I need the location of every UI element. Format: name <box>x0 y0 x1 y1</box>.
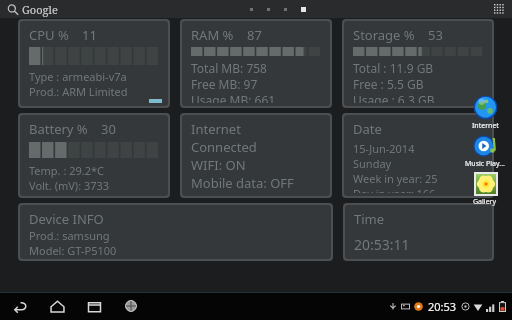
staticText: Storage % <box>353 26 415 44</box>
staticText: Mobile data: OFF <box>191 174 294 192</box>
staticText: Time <box>354 210 385 228</box>
staticText: Device INFO <box>29 210 104 228</box>
button[interactable]: RAM % <box>182 21 330 106</box>
staticText: Sunday <box>353 156 392 171</box>
staticText: Date <box>353 120 382 138</box>
button[interactable]: Home <box>45 294 69 318</box>
button[interactable]: Internet <box>461 94 509 131</box>
staticText: Prod.: ARM Limited <box>29 84 128 99</box>
staticText: Battery % <box>29 120 88 138</box>
button[interactable]: Battery % <box>20 115 168 196</box>
button[interactable]: Date <box>344 115 492 196</box>
staticText: Week in year: 25 <box>353 171 438 186</box>
button[interactable]: Device INFO <box>20 205 331 259</box>
button[interactable]: Time <box>345 205 492 259</box>
button[interactable]: Recent apps <box>82 294 106 318</box>
staticText: Day in year: 166 <box>353 186 436 193</box>
staticText: 15-Jun-2014 <box>353 141 415 156</box>
button[interactable]: Internet <box>182 115 330 196</box>
staticText: Total : 11.9 GB <box>353 60 434 76</box>
staticText: Prod.: samsung <box>29 228 110 243</box>
staticText: 30 <box>101 120 116 138</box>
staticText: Model: GT-P5100 <box>29 243 117 256</box>
staticText: Gallery <box>473 197 497 207</box>
button[interactable]: CPU % <box>20 21 168 106</box>
button[interactable]: Search <box>6 3 19 16</box>
staticText: Music Play... <box>465 159 505 169</box>
staticText: 87 <box>247 26 262 44</box>
staticText: Total MB: 758 <box>191 60 267 76</box>
button[interactable]: All apps <box>492 2 507 17</box>
staticText: Type : armeabi-v7a <box>29 69 127 84</box>
staticText: Internet <box>191 120 241 138</box>
staticText: Volt. (mV): 3733 <box>29 178 110 193</box>
staticText: CPU % <box>29 26 69 44</box>
button[interactable]: Music Play... <box>461 132 509 169</box>
staticText: Temp. : 29.2*C <box>29 163 105 178</box>
button[interactable]: Storage % <box>344 21 492 106</box>
staticText: Connected <box>191 138 257 156</box>
staticText: Usage : 6.3 GB <box>353 92 435 103</box>
staticText: Free : 5.5 GB <box>353 76 424 92</box>
staticText: Internet <box>472 121 499 131</box>
staticText: WIFI: ON <box>191 156 246 174</box>
staticText: 53 <box>428 26 443 44</box>
staticText: Free MB: 97 <box>191 76 258 92</box>
staticText: 20:53:11 <box>354 235 410 254</box>
staticText: 11 <box>82 26 97 44</box>
button[interactable]: Back <box>8 294 32 318</box>
button[interactable]: Google <box>22 2 58 17</box>
staticText: Usage MB: 661 <box>191 92 276 103</box>
button[interactable]: Screen capture <box>119 294 143 318</box>
staticText: RAM % <box>191 26 234 44</box>
staticText: 20:53 <box>428 299 457 314</box>
button[interactable]: Gallery <box>461 170 509 207</box>
